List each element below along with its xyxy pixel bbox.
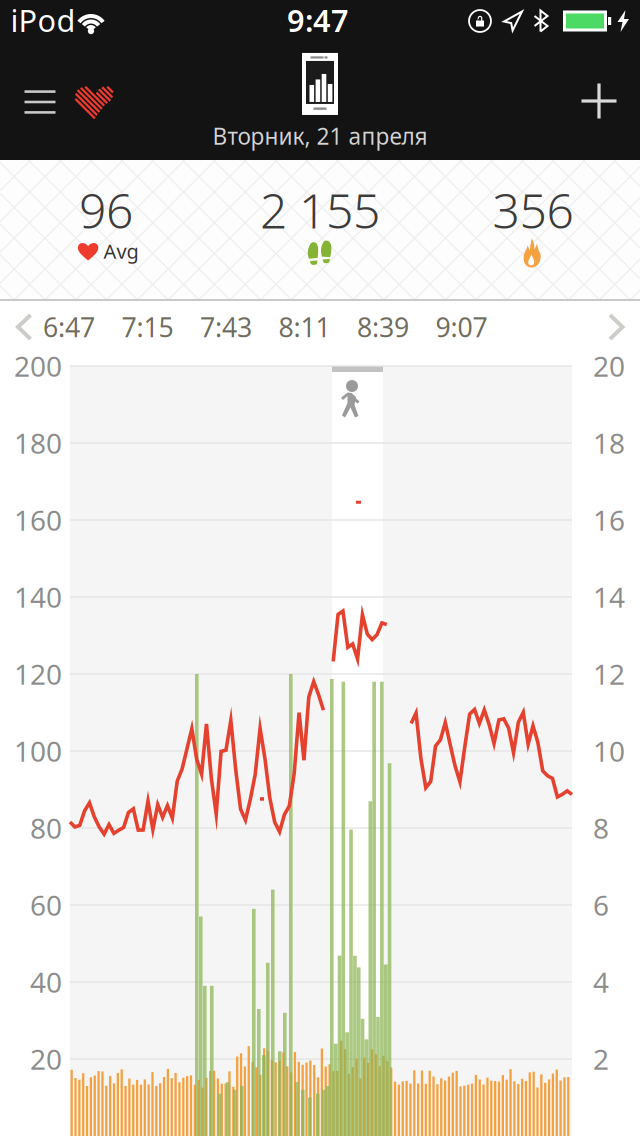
button[interactable]: Menu <box>6 70 73 134</box>
button[interactable]: Add activity <box>563 65 634 136</box>
staticText: 60 <box>30 886 62 924</box>
staticText: 160 <box>14 501 62 539</box>
button[interactable]: Вторник, 21 апреля <box>204 53 435 151</box>
staticText: 100 <box>14 732 62 770</box>
staticText: 14 <box>593 578 625 616</box>
staticText: 6:47 <box>43 309 95 345</box>
staticText: 7:15 <box>121 309 173 345</box>
staticText: 200 <box>14 347 62 385</box>
staticText: 80 <box>30 809 62 847</box>
staticText: 18 <box>593 424 625 462</box>
staticText: 8:11 <box>278 309 330 345</box>
staticText: 96 <box>79 178 133 242</box>
staticText: 4 <box>593 963 609 1001</box>
staticText: 8:39 <box>357 309 409 345</box>
staticText: 40 <box>30 963 62 1001</box>
staticText: iPod <box>10 0 75 40</box>
staticText: 2 155 <box>260 178 380 242</box>
staticText: 140 <box>14 578 62 616</box>
staticText: 9:47 <box>287 0 349 40</box>
button[interactable]: Runtastic <box>63 75 124 133</box>
staticText: 8 <box>593 809 609 847</box>
staticText: Avg <box>103 238 138 264</box>
staticText: 356 <box>492 178 573 242</box>
staticText: 6 <box>593 886 609 924</box>
staticText: 10 <box>593 732 625 770</box>
staticText: 2 <box>593 1040 609 1078</box>
staticText: 20 <box>30 1040 62 1078</box>
staticText: 9:07 <box>435 309 487 345</box>
staticText: 16 <box>593 501 625 539</box>
staticText: 12 <box>593 655 625 693</box>
staticText: 7:43 <box>200 309 252 345</box>
staticText: 120 <box>14 655 62 693</box>
staticText: 20 <box>593 347 625 385</box>
button[interactable]: Next interval <box>593 299 638 355</box>
staticText: Вторник, 21 апреля <box>212 121 427 151</box>
staticText: 180 <box>14 424 62 462</box>
button[interactable]: Previous interval <box>1 299 46 355</box>
